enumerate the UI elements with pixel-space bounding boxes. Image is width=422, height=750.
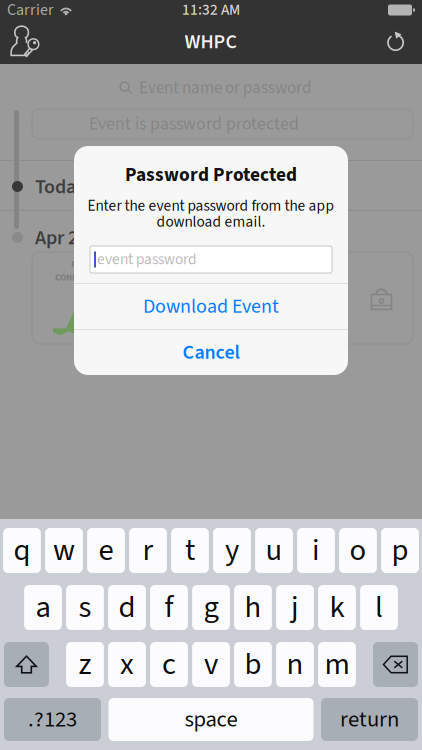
staticText: g [203, 586, 218, 629]
staticText: l [375, 586, 383, 629]
staticText: o [349, 529, 366, 572]
button[interactable]: space [108, 698, 313, 741]
staticText: u [265, 529, 282, 572]
button[interactable]: c [150, 642, 188, 687]
staticText: CONFERENCE [55, 271, 109, 284]
staticText: s [78, 586, 91, 629]
staticText: i [312, 529, 320, 572]
staticText: Event name or password [139, 76, 311, 100]
staticText: c [162, 643, 176, 686]
button[interactable]: Shift [4, 642, 49, 687]
staticText: PARTNER [71, 258, 109, 271]
button[interactable]: g [192, 585, 230, 630]
staticText: 11:32 AM [182, 0, 240, 21]
staticText: q [13, 529, 30, 572]
staticText: Cancel [182, 338, 239, 367]
staticText: return [340, 703, 399, 736]
staticText: Password Protected [125, 161, 297, 189]
staticText: event password [97, 249, 197, 270]
staticText: y [225, 529, 239, 572]
button[interactable]: u [255, 528, 293, 573]
button[interactable]: j [276, 585, 314, 630]
staticText: m [324, 643, 349, 686]
button[interactable]: n [276, 642, 314, 687]
button[interactable]: b [234, 642, 272, 687]
staticText: .?123 [28, 703, 77, 736]
button[interactable]: a [24, 585, 62, 630]
button[interactable]: r [129, 528, 167, 573]
staticText: Apr 25 [35, 224, 88, 252]
button[interactable]: d [108, 585, 146, 630]
staticText: Today [35, 173, 86, 201]
staticText: x [120, 643, 134, 686]
button[interactable]: e [87, 528, 125, 573]
button[interactable]: x [108, 642, 146, 687]
button[interactable]: z [66, 642, 104, 687]
button[interactable]: w [45, 528, 83, 573]
staticText: t [185, 529, 195, 572]
button[interactable]: t [171, 528, 209, 573]
staticText: WHPC [184, 28, 237, 56]
staticText: w [53, 529, 75, 572]
staticText: download email. [156, 211, 265, 233]
button[interactable]: k [318, 585, 356, 630]
staticText: n [286, 643, 303, 686]
staticText: Download Event [143, 292, 279, 321]
staticText: v [204, 643, 218, 686]
staticText: Carrier [7, 0, 54, 21]
button[interactable]: v [192, 642, 230, 687]
staticText: r [142, 529, 153, 572]
button[interactable]: i [297, 528, 335, 573]
button[interactable]: s [66, 585, 104, 630]
button[interactable]: .?123 [4, 698, 101, 741]
button[interactable]: f [150, 585, 188, 630]
staticText: Conference [191, 284, 288, 312]
button[interactable]: p [381, 528, 419, 573]
staticText: Event is password protected [89, 111, 299, 137]
staticText: k [329, 586, 344, 629]
button[interactable]: Delete [373, 642, 418, 687]
staticText: b [244, 643, 261, 686]
button[interactable]: Account [0, 20, 52, 64]
button[interactable]: q [3, 528, 41, 573]
staticText: d [118, 586, 135, 629]
button[interactable]: Refresh [370, 20, 422, 64]
staticText: p [391, 529, 408, 572]
staticText: h [244, 586, 261, 629]
button[interactable]: l [360, 585, 398, 630]
staticText: e [98, 529, 113, 572]
staticText: z [78, 643, 91, 686]
button[interactable]: Download Event [74, 284, 348, 329]
staticText: space [184, 703, 237, 736]
button[interactable]: Cancel [74, 330, 348, 375]
staticText: f [164, 586, 173, 629]
staticText: a [35, 586, 50, 629]
button[interactable]: h [234, 585, 272, 630]
staticText: Enter the event password from the app [87, 195, 334, 217]
button[interactable]: return [321, 698, 418, 741]
button[interactable]: y [213, 528, 251, 573]
button[interactable]: m [318, 642, 356, 687]
staticText: j [291, 586, 299, 629]
button[interactable]: o [339, 528, 377, 573]
